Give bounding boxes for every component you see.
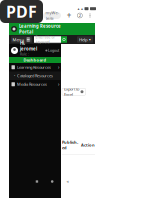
staticText: Enter title or keyword xyxy=(35,35,54,44)
staticText: Logout xyxy=(48,48,59,53)
staticText: Media Resources xyxy=(17,81,47,87)
staticText: Role : Librarian xyxy=(20,52,34,61)
staticText: ▴ xyxy=(81,6,83,11)
staticText: Published xyxy=(62,139,78,150)
staticText: ▴ xyxy=(77,6,79,11)
button[interactable]: Export to Excel xyxy=(62,88,85,95)
button[interactable]: Media Resources xyxy=(9,80,61,88)
staticText: + xyxy=(67,10,72,21)
staticText: Export to Excel xyxy=(64,86,79,97)
staticText: myWebsite xyxy=(45,10,58,21)
staticText: › xyxy=(58,64,59,70)
staticText: • xyxy=(14,74,15,78)
button[interactable]: PDF xyxy=(0,0,43,23)
staticText: Cataloged Resources xyxy=(17,73,53,78)
button[interactable]: Menu xyxy=(11,36,32,43)
staticText: Learning Resources xyxy=(17,64,51,70)
staticText: Portal xyxy=(19,29,33,35)
staticText: Dashboard xyxy=(23,57,46,63)
staticText: PDF xyxy=(6,1,37,22)
staticText: Action xyxy=(81,142,95,148)
staticText: Menu xyxy=(12,37,24,42)
button[interactable]: • xyxy=(9,71,61,80)
staticText: ▾ xyxy=(89,37,91,41)
staticText: Help xyxy=(79,37,88,42)
button[interactable]: Dashboard xyxy=(9,57,61,63)
staticText: ◂ xyxy=(66,179,68,184)
staticText: 2 xyxy=(79,13,81,18)
staticText: › xyxy=(58,81,59,87)
button[interactable]: Learning Resources xyxy=(9,63,61,71)
button[interactable]: Help xyxy=(77,36,93,43)
button[interactable]: Logout xyxy=(45,48,59,53)
staticText: Learning Resource xyxy=(19,23,61,29)
staticText: Hi, jeromel xyxy=(20,40,37,52)
